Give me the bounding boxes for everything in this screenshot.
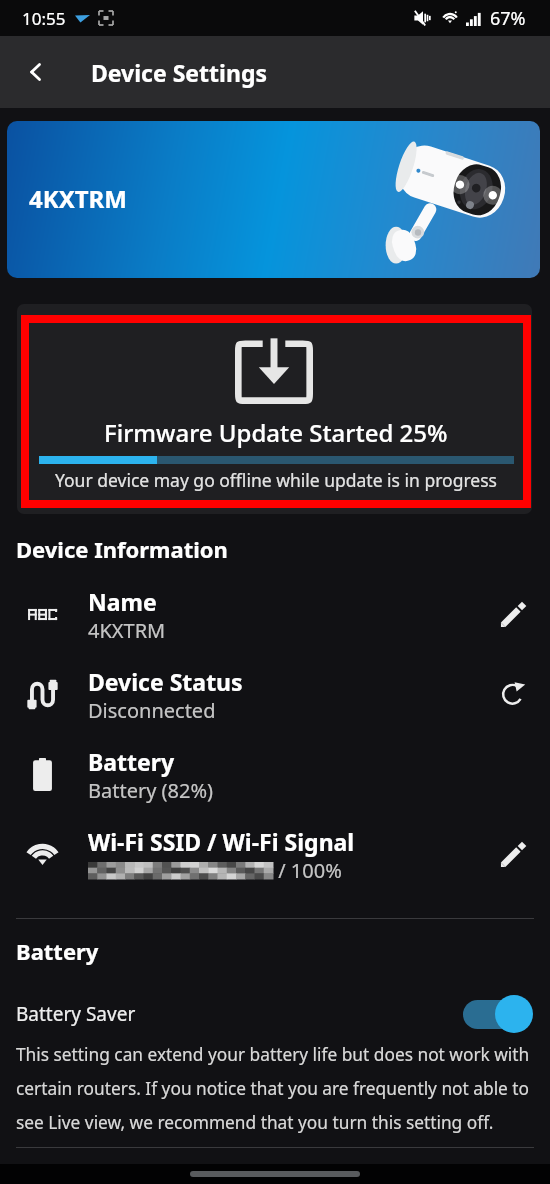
button[interactable]: 4KXTRM: [7, 121, 540, 278]
staticText: 4KXTRM: [88, 617, 166, 644]
staticText: Battery Saver: [16, 1001, 136, 1027]
button[interactable]: Battery Saver: [0, 988, 550, 1040]
button[interactable]: Edit: [485, 826, 541, 882]
button[interactable]: Edit: [485, 586, 541, 642]
staticText: This setting can extend your battery lif…: [16, 1043, 538, 1134]
staticText: 4KXTRM: [29, 182, 127, 215]
button[interactable]: [17, 304, 532, 514]
staticText: 67%: [490, 6, 526, 31]
staticText: Device Information: [16, 534, 228, 564]
button[interactable]: Name: [0, 574, 550, 654]
staticText: / 100%: [273, 857, 342, 884]
staticText: Your device may go offline while update …: [55, 468, 497, 492]
staticText: Wi-Fi SSID / Wi-Fi Signal: [88, 826, 355, 857]
staticText: Name: [88, 586, 157, 617]
staticText: Battery: [16, 936, 99, 966]
staticText: Battery (82%): [88, 777, 214, 804]
staticText: Device Status: [88, 666, 243, 697]
button[interactable]: Wi-Fi SSID / Wi-Fi Signal: [0, 814, 550, 894]
staticText: 10:55: [22, 7, 66, 30]
button[interactable]: Refresh: [485, 666, 541, 722]
staticText: Battery: [88, 746, 175, 777]
button[interactable]: Battery Saver toggle, on: [459, 995, 533, 1033]
button[interactable]: Back: [10, 46, 62, 98]
staticText: Device Settings: [91, 57, 267, 88]
staticText: Disconnected: [88, 697, 216, 724]
button[interactable]: Device Status: [0, 654, 550, 734]
button[interactable]: Battery: [0, 734, 550, 814]
staticText: Firmware Update Started 25%: [104, 416, 448, 449]
